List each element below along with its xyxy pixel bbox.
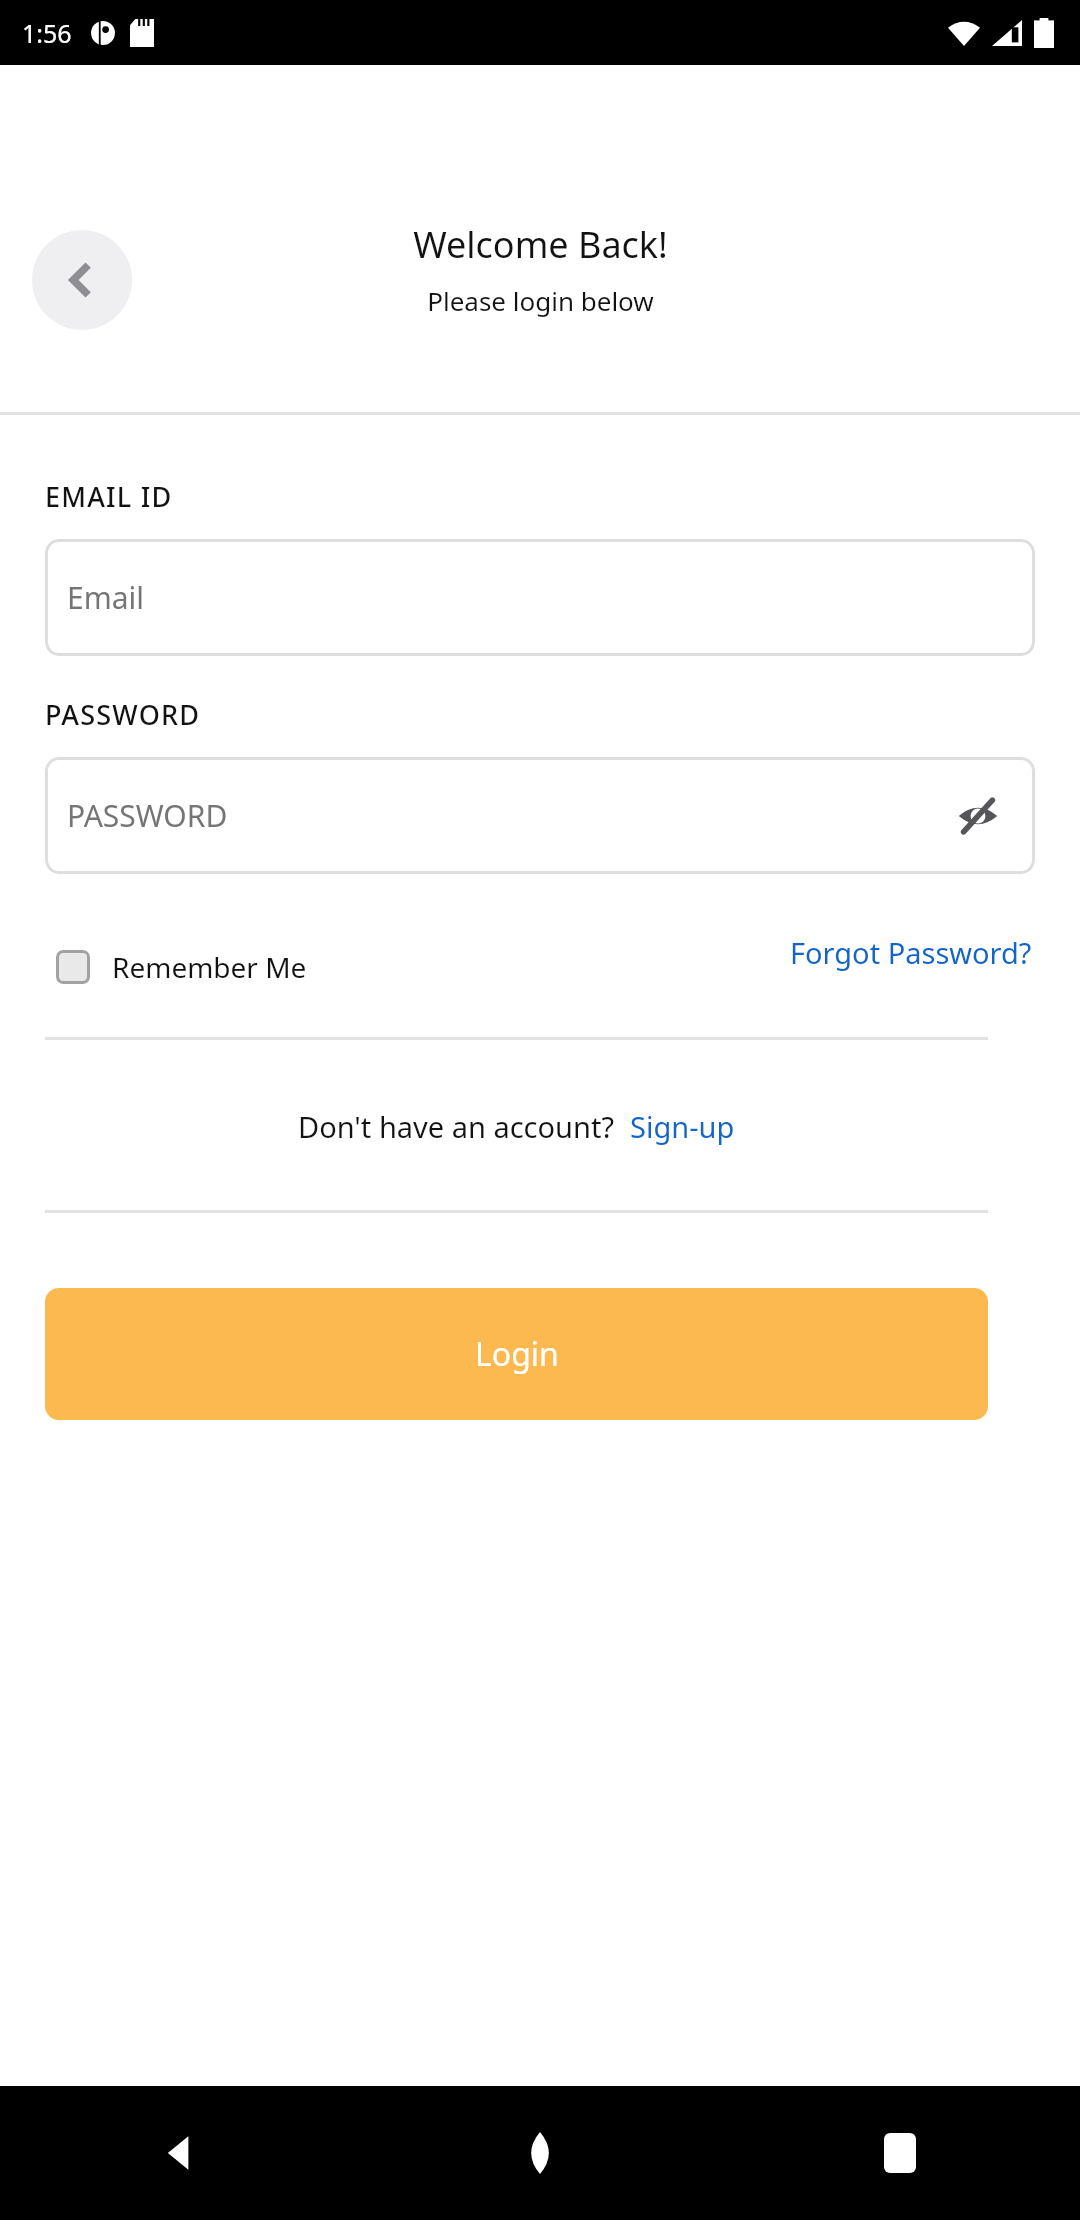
staticText: Forgot Password? bbox=[790, 933, 1032, 972]
staticText: Sign-up bbox=[630, 1107, 735, 1146]
staticText: 1:56 bbox=[22, 16, 72, 50]
button[interactable]: PASSWORD bbox=[45, 757, 1035, 874]
staticText: PASSWORD bbox=[67, 795, 228, 836]
staticText: Welcome Back! bbox=[413, 220, 668, 269]
staticText: EMAIL ID bbox=[45, 478, 173, 515]
button[interactable]: Forgot Password? bbox=[790, 933, 1032, 972]
button[interactable]: Remember Me bbox=[56, 948, 307, 986]
staticText: Email bbox=[67, 577, 145, 618]
staticText: Don't have an account? bbox=[298, 1107, 614, 1146]
button[interactable]: Show password bbox=[951, 789, 1005, 843]
button[interactable]: Login bbox=[45, 1288, 988, 1420]
staticText: Login bbox=[475, 1332, 559, 1376]
staticText: Please login below bbox=[427, 283, 654, 318]
staticText: PASSWORD bbox=[45, 696, 201, 733]
button[interactable]: Email bbox=[45, 539, 1035, 656]
button[interactable]: Home bbox=[360, 2086, 720, 2220]
staticText: Remember Me bbox=[112, 948, 307, 986]
button[interactable]: Back bbox=[32, 230, 132, 330]
button[interactable]: Back bbox=[0, 2086, 360, 2220]
button[interactable]: Sign-up bbox=[630, 1107, 735, 1146]
button[interactable]: Recent apps bbox=[720, 2086, 1080, 2220]
